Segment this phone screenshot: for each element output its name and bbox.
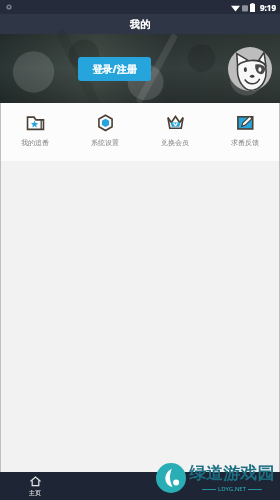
staticText: LDYG.NET [218, 485, 246, 493]
staticText: 主页 [29, 489, 41, 497]
button[interactable]: 系统设置 [70, 103, 140, 161]
other: 系统设置 [96, 113, 115, 132]
button[interactable]: 头像 [228, 47, 272, 91]
button[interactable]: 兑换会员 [140, 103, 210, 161]
staticText: 兑换会员 [161, 138, 189, 147]
button[interactable]: 主页 [0, 472, 70, 500]
button[interactable]: 登录/注册 [78, 57, 151, 81]
staticText: 我的追番 [21, 138, 49, 147]
other: 求番反馈 [236, 113, 255, 132]
other: 主页 [30, 476, 41, 487]
button[interactable]: 求番反馈 [210, 103, 280, 161]
staticText: 我的 [130, 18, 150, 31]
staticText: 系统设置 [91, 138, 119, 147]
staticText: 9:19 [260, 2, 276, 13]
other: 兑换会员 [166, 113, 185, 132]
button[interactable]: 我的追番 [0, 103, 70, 161]
staticText: 绿道游戏园 [189, 463, 274, 484]
staticText: 登录/注册 [92, 62, 137, 76]
staticText: 求番反馈 [231, 138, 259, 147]
other: 我的追番 [26, 113, 45, 132]
